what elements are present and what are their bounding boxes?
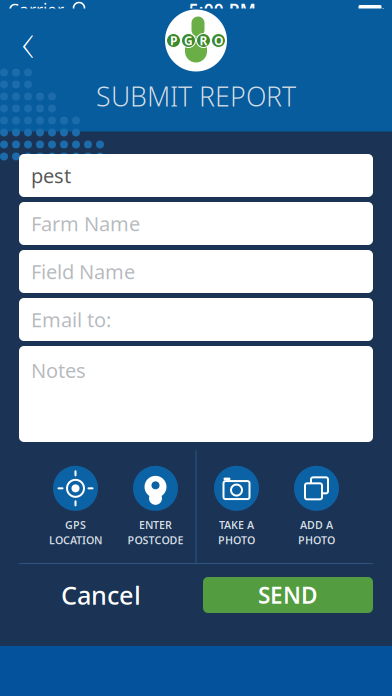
- button[interactable]: ADD A: [276, 466, 356, 547]
- button[interactable]: TAKE A: [196, 466, 276, 547]
- button[interactable]: Farm Name: [19, 202, 373, 245]
- staticText: Field Name: [31, 258, 135, 285]
- staticText: R: [199, 32, 207, 48]
- staticText: pest: [31, 162, 71, 189]
- staticText: 5:00 PM: [189, 0, 256, 21]
- button[interactable]: GPS: [35, 466, 115, 547]
- staticText: SUBMIT REPORT: [96, 78, 296, 114]
- button[interactable]: ENTER: [115, 466, 195, 547]
- staticText: Email to:: [31, 306, 111, 333]
- staticText: Notes: [31, 357, 86, 384]
- staticText: GPS: [65, 518, 86, 532]
- staticText: TAKE A: [219, 518, 254, 532]
- staticText: Farm Name: [31, 210, 140, 237]
- button[interactable]: Notes: [19, 346, 373, 442]
- staticText: LOCATION: [49, 533, 102, 547]
- staticText: PHOTO: [218, 533, 255, 547]
- staticText: G: [184, 32, 193, 48]
- staticText: Cancel: [61, 578, 141, 612]
- staticText: SEND: [258, 580, 318, 610]
- staticText: Carrier: [8, 0, 64, 21]
- staticText: PHOTO: [298, 533, 335, 547]
- staticText: POSTCODE: [127, 533, 183, 547]
- button[interactable]: SEND: [203, 577, 373, 613]
- button[interactable]: Cancel: [19, 577, 183, 613]
- staticText: ENTER: [139, 518, 172, 532]
- button[interactable]: Email to:: [19, 298, 373, 341]
- button[interactable]: pest: [19, 154, 373, 197]
- staticText: O: [214, 32, 223, 48]
- staticText: P: [170, 32, 177, 48]
- button[interactable]: Back: [6, 18, 50, 62]
- button[interactable]: Field Name: [19, 250, 373, 293]
- staticText: ADD A: [300, 518, 333, 532]
- staticText: ‹: [21, 1, 34, 79]
